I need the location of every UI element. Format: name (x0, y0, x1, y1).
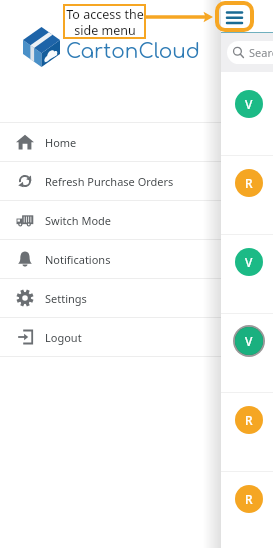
staticText: CartonCloud (66, 40, 200, 62)
staticText: Refresh Purchase Orders (45, 174, 174, 189)
staticText: V (245, 96, 253, 112)
staticText: To access the side menu (66, 6, 144, 38)
button[interactable]: R (0, 472, 273, 548)
button[interactable]: Search (227, 41, 273, 64)
button[interactable]: Open navigation menu (217, 3, 252, 30)
staticText: R (245, 491, 253, 507)
staticText: Logout (45, 330, 82, 345)
button[interactable]: V (0, 77, 273, 156)
button[interactable]: R (0, 393, 273, 472)
staticText: Switch Mode (45, 213, 112, 228)
button[interactable]: Switch Mode (0, 201, 221, 239)
staticText: R (245, 412, 253, 428)
staticText: V (245, 333, 253, 349)
button[interactable]: Refresh Purchase Orders (0, 162, 221, 200)
staticText: Settings (45, 291, 87, 306)
button[interactable]: V (0, 314, 273, 393)
staticText: Home (45, 135, 77, 150)
staticText: Search (249, 45, 273, 60)
button[interactable]: V (0, 235, 273, 314)
button[interactable]: Logout (0, 318, 221, 356)
button[interactable]: Notifications (0, 240, 221, 278)
button[interactable]: Home (0, 123, 221, 161)
staticText: R (245, 175, 253, 191)
staticText: Notifications (45, 252, 111, 267)
button[interactable]: Settings (0, 279, 221, 317)
staticText: V (245, 254, 253, 270)
staticText: V (245, 333, 253, 349)
button[interactable]: R (0, 156, 273, 235)
